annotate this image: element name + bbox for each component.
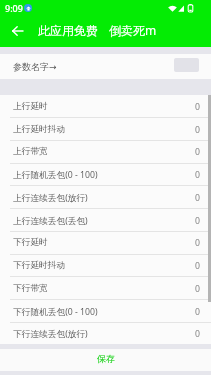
staticText: 上行带宽 — [13, 146, 48, 157]
button[interactable]: 上行带宽 — [0, 140, 211, 163]
staticText: 0 — [195, 215, 200, 227]
staticText: 0 — [195, 283, 200, 295]
staticText: 0 — [195, 192, 200, 204]
staticText: 0 — [195, 124, 200, 136]
button[interactable]: 上行延时抖动 — [0, 118, 211, 141]
button[interactable]: 上行随机丢包(0 - 100) — [0, 163, 211, 186]
staticText: 下行连续丢包(放行) — [13, 328, 88, 340]
staticText: 0 — [195, 101, 200, 113]
staticText: 9:09 — [5, 2, 23, 14]
staticText: 上行随机丢包(0 - 100) — [13, 169, 98, 181]
staticText: 倒卖死m — [109, 22, 157, 38]
staticText: 0 — [195, 169, 200, 181]
button[interactable]: 上行连续丢包(丢包) — [0, 209, 211, 232]
button[interactable]: 保存 — [0, 349, 211, 371]
button[interactable]: 下行带宽 — [0, 277, 211, 300]
staticText: 下行随机丢包(0 - 100) — [13, 306, 98, 318]
staticText: 保存 — [97, 353, 115, 364]
staticText: 0 — [195, 306, 200, 318]
staticText: 上行连续丢包(放行) — [13, 192, 88, 204]
staticText: 此应用免费 — [38, 23, 98, 38]
staticText: 上行延时 — [13, 101, 48, 112]
staticText: 下行延时抖动 — [13, 260, 66, 271]
staticText: 0 — [195, 260, 200, 272]
staticText: 上行连续丢包(丢包) — [13, 215, 88, 227]
button[interactable]: 下行连续丢包(放行) — [0, 322, 211, 345]
staticText: 下行带宽 — [13, 283, 48, 294]
button[interactable]: 上行延时 — [0, 95, 211, 118]
button[interactable]: 上行连续丢包(放行) — [0, 186, 211, 209]
staticText: 上行延时抖动 — [13, 124, 66, 135]
staticText: 下行延时 — [13, 237, 48, 248]
staticText: 0 — [195, 237, 200, 249]
button[interactable]: 下行延时 — [0, 231, 211, 254]
button[interactable]: Back — [6, 20, 28, 42]
staticText: 0 — [195, 328, 200, 340]
staticText: 参数名字→ — [13, 61, 57, 72]
staticText: 0 — [195, 146, 200, 158]
button[interactable]: 下行随机丢包(0 - 100) — [0, 300, 211, 323]
button[interactable]: 下行延时抖动 — [0, 254, 211, 277]
